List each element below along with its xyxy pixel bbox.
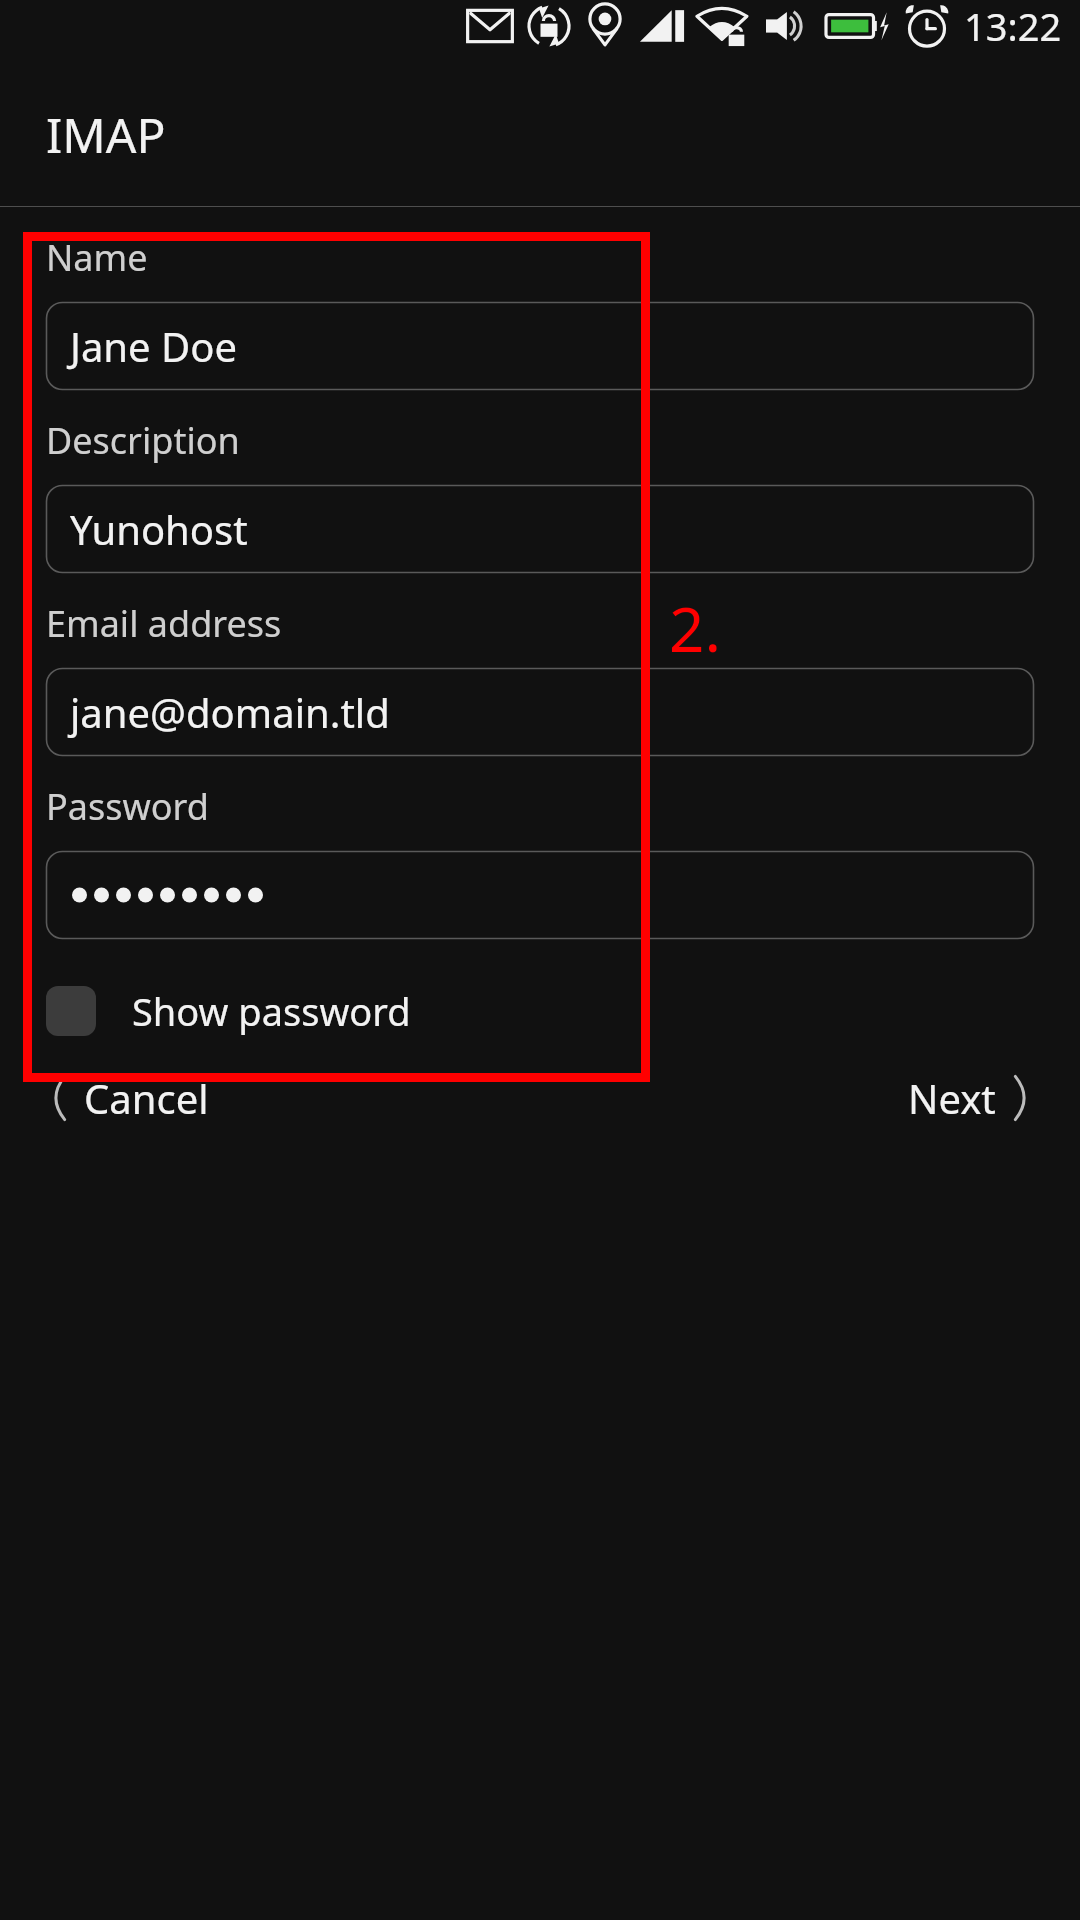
button[interactable]: Show password [46, 979, 411, 1043]
staticText: Yunohost [70, 502, 248, 556]
staticText: Description [46, 416, 240, 465]
button[interactable]: jane@domain.tld [46, 668, 1034, 756]
button[interactable]: Next [898, 1061, 1044, 1135]
staticText: Password [46, 782, 209, 831]
staticText: 13:22 [964, 0, 1062, 52]
staticText: Next [908, 1071, 996, 1125]
staticText: Name [46, 233, 148, 282]
staticText: Email address [46, 599, 282, 648]
button[interactable]: Cancel [36, 1061, 219, 1135]
button[interactable] [46, 851, 1034, 939]
staticText: 2. [669, 586, 722, 670]
staticText: jane@domain.tld [70, 685, 390, 739]
staticText: Jane Doe [70, 319, 237, 373]
staticText: Cancel [84, 1071, 209, 1125]
button[interactable]: Jane Doe [46, 302, 1034, 390]
staticText: IMAP [46, 102, 166, 167]
button[interactable]: Yunohost [46, 485, 1034, 573]
staticText: Show password [132, 985, 411, 1037]
